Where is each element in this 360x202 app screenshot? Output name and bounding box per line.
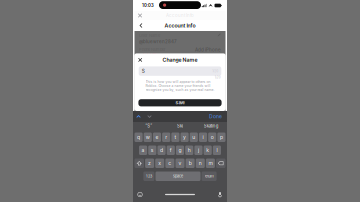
staticText: j: [198, 147, 199, 153]
button[interactable]: v: [175, 158, 184, 168]
button[interactable]: e: [153, 132, 161, 142]
staticText: z: [148, 160, 151, 166]
button[interactable]: x: [155, 158, 164, 168]
staticText: a: [142, 147, 145, 153]
button[interactable]: Phone Number: [134, 46, 225, 59]
staticText: “S”: [145, 123, 152, 129]
staticText: f: [170, 147, 172, 153]
button[interactable]: Close: [134, 11, 145, 20]
button[interactable]: 123: [143, 171, 154, 181]
staticText: 1/20: [215, 76, 221, 79]
staticText: m: [208, 160, 212, 166]
button[interactable]: Skating: [196, 122, 227, 130]
staticText: s: [151, 147, 154, 153]
staticText: y: [183, 134, 186, 140]
staticText: r: [165, 134, 167, 140]
staticText: g: [178, 147, 181, 153]
button[interactable]: Dictate: [214, 190, 225, 198]
button[interactable]: d: [157, 145, 166, 155]
staticText: S: [142, 68, 145, 74]
button[interactable]: p: [217, 132, 225, 142]
button[interactable]: y: [181, 132, 189, 142]
staticText: @bluewren2847: [139, 39, 177, 44]
staticText: c: [168, 160, 171, 166]
staticText: 10:03: [142, 3, 154, 8]
button[interactable]: Save: [138, 99, 222, 106]
button[interactable]: n: [196, 158, 205, 168]
button[interactable]: Done: [209, 111, 227, 122]
button[interactable]: “S”: [133, 122, 164, 130]
staticText: d: [160, 147, 163, 153]
button[interactable]: Previous field: [133, 111, 144, 122]
button[interactable]: Back: [134, 20, 147, 31]
staticText: x: [158, 160, 161, 166]
staticText: Skating: [204, 123, 219, 129]
staticText: Ski: [177, 123, 183, 129]
button[interactable]: Next field: [144, 111, 155, 122]
staticText: i: [202, 134, 203, 140]
button[interactable]: q: [134, 132, 143, 142]
staticText: 123: [146, 174, 152, 178]
button[interactable]: Close: [134, 53, 146, 66]
button[interactable]: j: [194, 145, 202, 155]
button[interactable]: w: [144, 132, 152, 142]
button[interactable]: c: [165, 158, 174, 168]
staticText: o: [211, 134, 214, 140]
staticText: e: [155, 134, 158, 140]
staticText: Add iPhone: [195, 47, 221, 52]
staticText: u: [192, 134, 195, 140]
button[interactable]: m: [206, 158, 215, 168]
staticText: This is how you will appear to others on…: [145, 80, 214, 92]
staticText: t: [174, 134, 176, 140]
staticText: q: [137, 134, 140, 140]
staticText: p: [220, 134, 223, 140]
button[interactable]: User Name: [134, 31, 225, 46]
button[interactable]: Emoji: [134, 190, 145, 198]
button[interactable]: s: [148, 145, 156, 155]
staticText: n: [199, 160, 202, 166]
staticText: w: [146, 134, 150, 140]
staticText: Done: [209, 113, 222, 119]
button[interactable]: space: [155, 171, 200, 181]
staticText: Account Info: [164, 22, 195, 29]
button[interactable]: Delete: [216, 158, 225, 168]
staticText: b: [189, 160, 192, 166]
staticText: return: [205, 174, 214, 178]
staticText: Account Info: [166, 13, 194, 18]
button[interactable]: h: [185, 145, 193, 155]
button[interactable]: r: [162, 132, 170, 142]
button[interactable]: o: [208, 132, 216, 142]
staticText: Add Phone: [143, 53, 167, 58]
button[interactable]: i: [199, 132, 207, 142]
button[interactable]: a: [139, 145, 147, 155]
staticText: Save: [175, 100, 184, 105]
staticText: 1/20: [212, 69, 218, 73]
button[interactable]: t: [171, 132, 179, 142]
button[interactable]: Shift: [134, 158, 144, 168]
button[interactable]: Ski: [164, 122, 196, 130]
button[interactable]: return: [202, 171, 217, 181]
button[interactable]: b: [186, 158, 195, 168]
staticText: l: [216, 147, 217, 153]
staticText: Change Name: [162, 57, 197, 63]
staticText: space: [173, 174, 183, 178]
staticText: h: [188, 147, 191, 153]
button[interactable]: u: [190, 132, 198, 142]
button[interactable]: k: [204, 145, 212, 155]
staticText: k: [206, 147, 209, 153]
button[interactable]: l: [213, 145, 221, 155]
button[interactable]: g: [176, 145, 184, 155]
button[interactable]: z: [145, 158, 154, 168]
button[interactable]: f: [167, 145, 175, 155]
staticText: v: [178, 160, 181, 166]
